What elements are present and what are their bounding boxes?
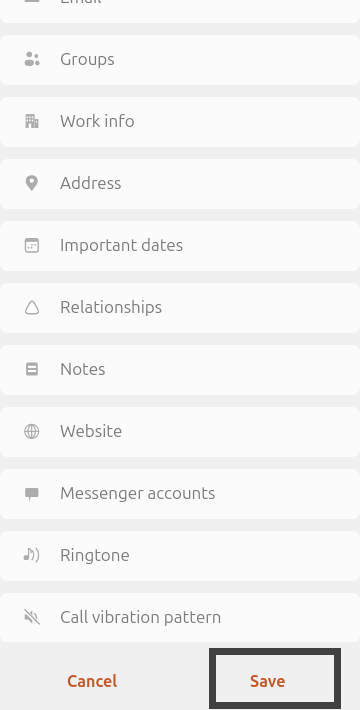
staticText: Address (60, 173, 122, 192)
staticText: Cancel (67, 672, 118, 690)
button[interactable]: Cancel (27, 652, 158, 710)
button[interactable]: Important dates (0, 221, 360, 271)
button[interactable]: Email (0, 0, 360, 23)
staticText: Notes (60, 359, 106, 378)
button[interactable]: Messenger accounts (0, 469, 360, 519)
button[interactable]: Call vibration pattern (0, 593, 360, 643)
staticText: Save (250, 672, 286, 690)
staticText: Relationships (60, 297, 163, 316)
button[interactable]: Groups (0, 35, 360, 85)
staticText: Ringtone (60, 545, 130, 564)
button[interactable]: Address (0, 159, 360, 209)
button[interactable]: Relationships (0, 283, 360, 333)
staticText: Work info (60, 111, 135, 130)
staticText: Email (60, 0, 102, 6)
staticText: Messenger accounts (60, 483, 216, 502)
button[interactable]: Save (202, 652, 333, 710)
button[interactable]: Website (0, 407, 360, 457)
button[interactable]: Notes (0, 345, 360, 395)
button[interactable]: Work info (0, 97, 360, 147)
staticText: Call vibration pattern (60, 607, 222, 626)
staticText: Website (60, 421, 123, 440)
staticText: Groups (60, 49, 115, 68)
button[interactable]: Ringtone (0, 531, 360, 581)
staticText: Important dates (60, 235, 184, 254)
